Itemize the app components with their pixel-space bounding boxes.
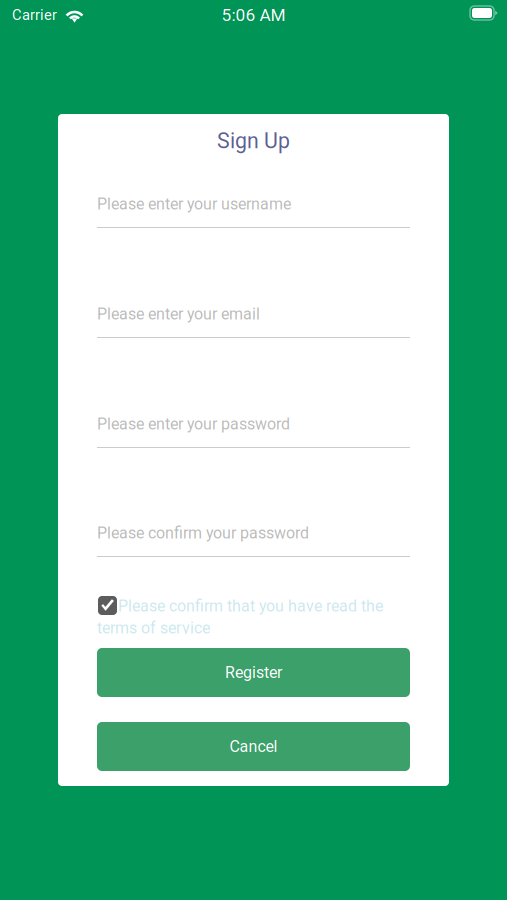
staticText: Please confirm your password: [97, 524, 309, 542]
staticText: Carrier: [12, 6, 57, 24]
button[interactable]: Please confirm your password: [97, 523, 410, 557]
staticText: Sign Up: [217, 128, 290, 153]
staticText: Please enter your username: [97, 195, 291, 213]
staticText: Register: [225, 663, 282, 682]
staticText: terms of service: [97, 619, 210, 637]
button[interactable]: Please enter your email: [97, 304, 410, 338]
staticText: Cancel: [229, 737, 277, 756]
button[interactable]: Register: [97, 648, 410, 697]
staticText: Please enter your email: [97, 305, 260, 323]
staticText: Please confirm that you have read the: [118, 597, 383, 615]
button[interactable]: Cancel: [97, 722, 410, 771]
button[interactable]: Confirm that you have read the terms of …: [97, 595, 410, 641]
staticText: Please enter your password: [97, 415, 290, 433]
staticText: 5:06 AM: [221, 5, 285, 25]
button[interactable]: Please enter your username: [97, 194, 410, 228]
button[interactable]: Please enter your password: [97, 414, 410, 448]
